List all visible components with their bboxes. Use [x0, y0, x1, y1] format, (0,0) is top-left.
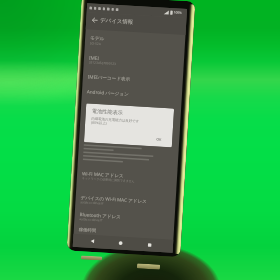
- staticText: モデル: [90, 35, 105, 42]
- staticText: IMEI: [89, 54, 99, 61]
- staticText: Wi-Fi MAC アドレス: [82, 170, 124, 179]
- staticText: デバイスの Wi-Fi MAC アドレス: [80, 194, 148, 204]
- staticText: aa:bb:cc:dd:ee:ff: [79, 217, 103, 222]
- staticText: ネットワークの切断時に識別できません: [82, 176, 135, 183]
- button[interactable]: モデル: [84, 35, 185, 54]
- staticText: 351234567890123: [89, 60, 117, 66]
- staticText: 電池性能表示: [92, 108, 124, 117]
- button[interactable]: IMEI: [83, 54, 184, 73]
- button[interactable]: Bluetooth アドレス: [74, 211, 175, 230]
- staticText: 稼働時間: [79, 227, 97, 234]
- button[interactable]: デバイスの Wi-Fi MAC アドレス: [75, 194, 176, 213]
- staticText: Android バージョン: [87, 88, 129, 97]
- staticText: OK: [156, 136, 162, 142]
- button[interactable]: Wi-Fi MAC アドレス: [76, 170, 177, 189]
- button[interactable]: Back: [89, 14, 100, 26]
- staticText: デバイス情報: [100, 17, 133, 26]
- button[interactable]: OK: [152, 134, 168, 144]
- staticText: 100%: [174, 10, 182, 15]
- staticText: aa:bb:cc:dd:ee:ff: [80, 200, 104, 205]
- staticText: Bluetooth アドレス: [79, 211, 122, 220]
- button[interactable]: IMEIバーコード表示: [82, 73, 183, 92]
- button[interactable]: Android バージョン: [81, 88, 182, 107]
- staticText: IMEIバーコード表示: [88, 73, 131, 82]
- staticText: SO-52A: [90, 41, 101, 46]
- staticText: 内蔵電池の充電能力は良好です (80%以上): [91, 117, 139, 127]
